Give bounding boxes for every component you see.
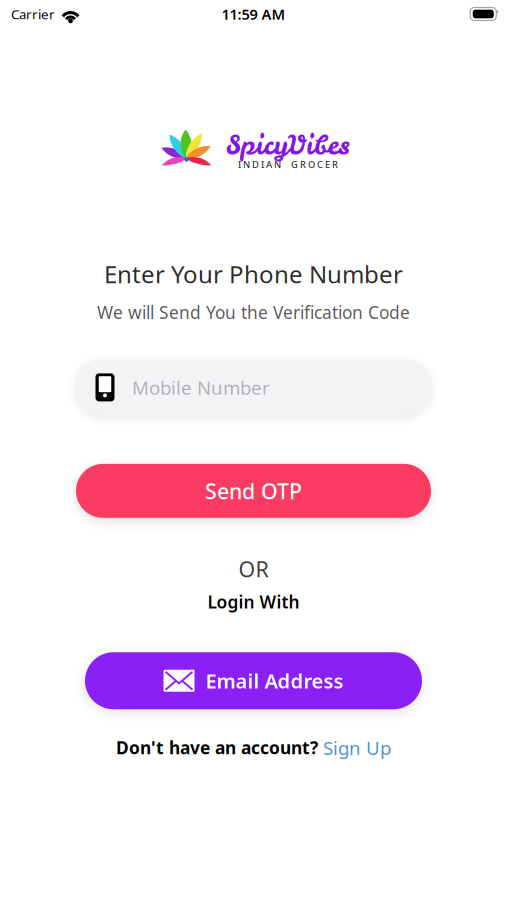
staticText: Enter Your Phone Number	[104, 258, 403, 290]
staticText: OR	[238, 555, 268, 583]
staticText: I N D I A N G R O C E R	[238, 158, 338, 171]
staticText: We will Send You the Verification Code	[97, 301, 410, 324]
button[interactable]: Sign Up	[323, 735, 391, 760]
staticText: Carrier	[11, 5, 55, 23]
staticText: Email Address	[205, 667, 343, 694]
button[interactable]: Email Address	[85, 652, 422, 709]
staticText: 11:59 AM	[221, 4, 285, 24]
staticText: Sign Up	[323, 735, 391, 760]
button[interactable]: Mobile Number	[75, 359, 432, 416]
staticText: Login With	[207, 590, 299, 613]
button[interactable]: Send OTP	[76, 464, 431, 518]
staticText: Don't have an account?	[116, 736, 318, 759]
staticText: Mobile Number	[132, 375, 270, 400]
staticText: SpicyVibes	[226, 127, 350, 163]
staticText: Send OTP	[205, 477, 302, 505]
